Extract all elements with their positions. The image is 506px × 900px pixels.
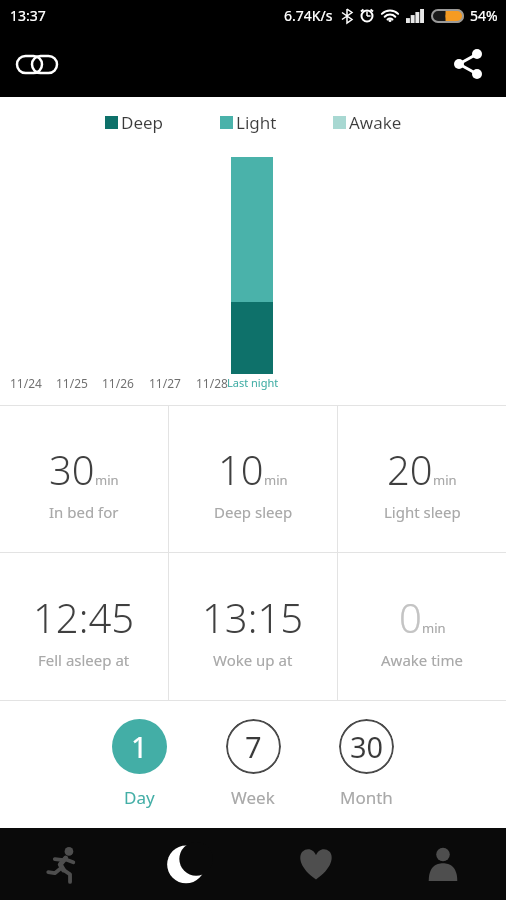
staticText: min <box>433 471 457 489</box>
staticText: 11/28 <box>196 375 228 391</box>
staticText: 10 <box>218 442 264 496</box>
staticText: 7 <box>245 727 262 766</box>
button[interactable]: 30 <box>0 412 168 552</box>
staticText: min <box>422 619 446 637</box>
staticText: Last night <box>227 375 279 390</box>
button[interactable]: 13:15 <box>169 559 337 700</box>
staticText: min <box>264 471 288 489</box>
staticText: Awake time <box>381 650 463 670</box>
button[interactable] <box>379 828 506 900</box>
staticText: Fell asleep at <box>38 650 130 670</box>
button[interactable]: 20 <box>338 412 506 552</box>
staticText: 12:45 <box>33 590 135 644</box>
staticText: 1 <box>131 727 148 766</box>
button[interactable]: 12:45 <box>0 559 168 700</box>
staticText: 6.74K/s <box>284 6 333 25</box>
staticText: 11/26 <box>102 375 134 391</box>
button[interactable] <box>0 828 126 900</box>
staticText: 30 <box>350 727 384 766</box>
button[interactable] <box>126 828 252 900</box>
button[interactable]: 1 <box>94 719 184 809</box>
staticText: 11/27 <box>149 375 181 391</box>
staticText: 13:37 <box>10 6 46 25</box>
staticText: Day <box>124 786 155 809</box>
button[interactable] <box>252 828 379 900</box>
staticText: Light sleep <box>384 502 461 522</box>
staticText: min <box>95 471 119 489</box>
staticText: 54% <box>470 6 498 25</box>
staticText: Week <box>231 786 275 809</box>
staticText: 13:15 <box>202 590 304 644</box>
staticText: Deep sleep <box>214 502 293 522</box>
staticText: 20 <box>387 442 433 496</box>
staticText: Awake <box>349 111 402 134</box>
staticText: In bed for <box>49 502 119 522</box>
staticText: 11/24 <box>10 375 42 391</box>
staticText: 0 <box>399 590 422 644</box>
button[interactable]: 0 <box>338 559 506 700</box>
button[interactable]: 10 <box>169 412 337 552</box>
staticText: Month <box>340 786 393 809</box>
button[interactable] <box>15 42 59 86</box>
button[interactable]: 30 <box>321 719 411 809</box>
button[interactable]: 7 <box>208 719 298 809</box>
staticText: 11/25 <box>56 375 88 391</box>
button[interactable] <box>446 42 490 86</box>
staticText: Deep <box>121 111 164 134</box>
staticText: Woke up at <box>213 650 293 670</box>
staticText: 30 <box>49 442 95 496</box>
staticText: Light <box>236 111 277 134</box>
